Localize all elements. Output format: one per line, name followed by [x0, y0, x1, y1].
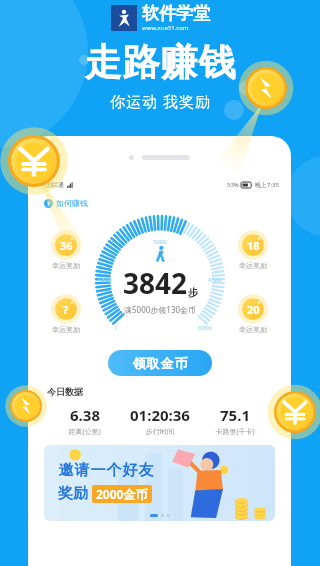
staticText: 走路赚钱 — [84, 39, 236, 86]
staticText: 36 — [60, 238, 73, 253]
staticText: 1 — [114, 324, 118, 332]
staticText: 2000金币 — [96, 486, 148, 502]
staticText: 幸运奖励 — [239, 325, 267, 334]
button[interactable]: ? — [42, 196, 90, 210]
staticText: 幸运奖励 — [52, 261, 80, 270]
button[interactable]: ? — [49, 292, 83, 336]
staticText: 如何赚钱 — [56, 198, 88, 208]
staticText: 步 — [188, 286, 198, 299]
staticText: 卡路里(千卡) — [215, 427, 255, 437]
staticText: 邀请一个好友 — [58, 461, 154, 480]
staticText: 软件学堂 — [142, 3, 210, 24]
staticText: 距离(公里) — [68, 427, 101, 437]
staticText: 幸运奖励 — [52, 325, 80, 334]
staticText: 满5000步领130金币 — [124, 304, 197, 315]
staticText: 今日数据 — [47, 386, 83, 397]
staticText: 3842 — [123, 264, 188, 302]
staticText: 01:20:36 — [130, 405, 190, 425]
staticText: 领取金币 — [132, 355, 188, 371]
staticText: ? — [63, 302, 69, 317]
staticText: 53% — [227, 181, 239, 189]
staticText: ? — [47, 200, 50, 208]
staticText: 幸运奖励 — [239, 261, 267, 270]
staticText: www.xue51.com — [142, 24, 189, 32]
staticText: 75.1 — [220, 405, 250, 425]
staticText: 你运动 我奖励 — [110, 91, 211, 111]
staticText: 20 — [247, 302, 260, 317]
staticText: 奖励 — [58, 484, 88, 503]
staticText: 18 — [247, 238, 260, 253]
staticText: 1500 — [98, 276, 112, 284]
staticText: 4500 — [208, 276, 222, 284]
button[interactable]: 36 — [49, 228, 83, 272]
button[interactable]: 18 — [236, 228, 270, 272]
staticText: 3000 — [153, 238, 167, 246]
button[interactable]: 20 — [236, 292, 270, 336]
staticText: 步行时间 — [146, 427, 174, 436]
button[interactable]: 领取金币 — [108, 350, 212, 376]
staticText: 6.38 — [70, 405, 100, 425]
staticText: 6000 — [198, 324, 212, 332]
staticText: 中国联通 — [40, 181, 64, 189]
button[interactable]: 邀请一个好友 — [44, 445, 275, 521]
staticText: 晚上7:35 — [255, 181, 279, 189]
